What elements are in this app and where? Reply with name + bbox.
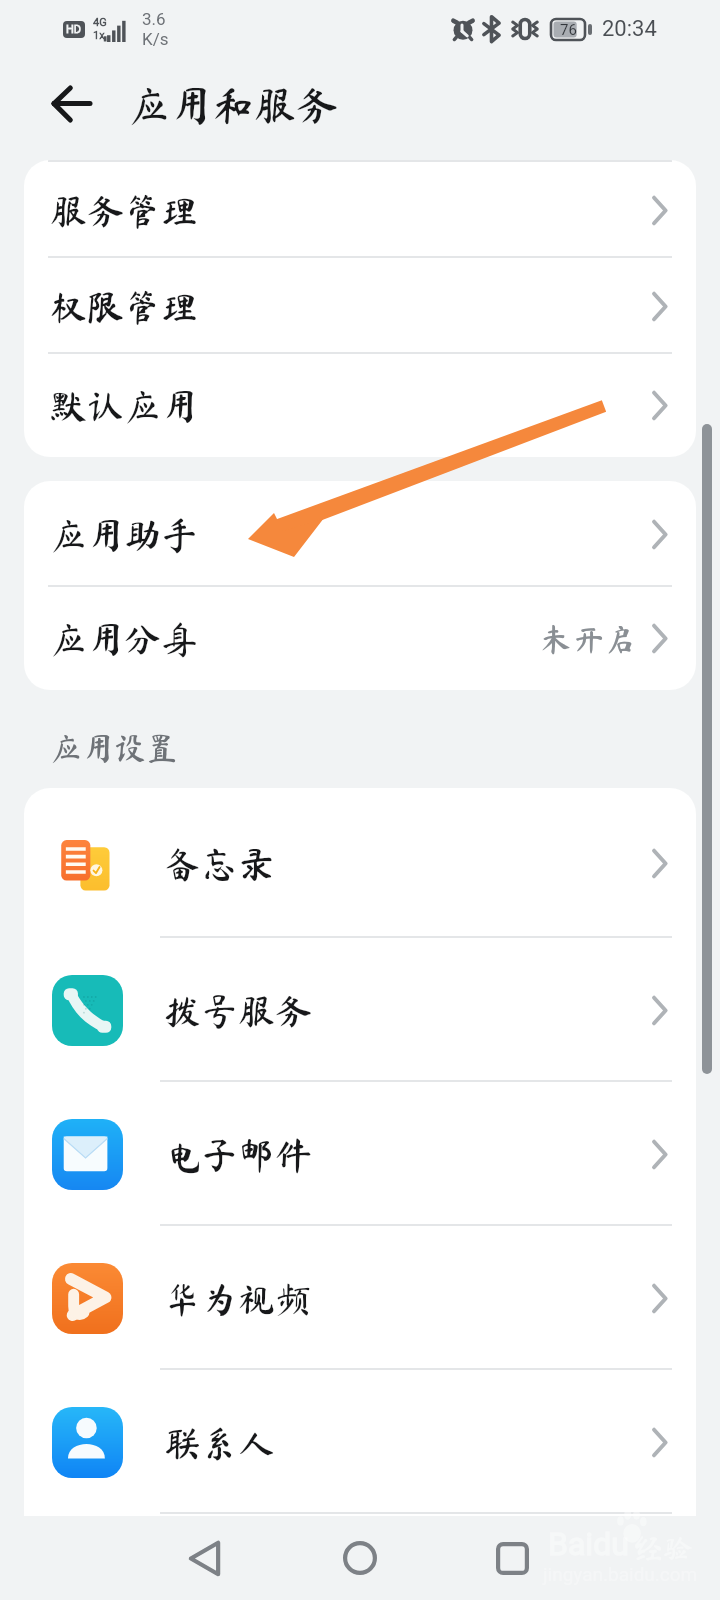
staticText: 应用分身 (50, 620, 198, 657)
button[interactable]: Back (34, 68, 110, 140)
button[interactable]: 应用分身 (24, 587, 696, 690)
button[interactable]: Back (160, 1516, 248, 1600)
button[interactable]: Home (316, 1516, 404, 1600)
staticText: 1x (93, 29, 105, 42)
staticText: 未开启 (540, 623, 637, 655)
staticText: 应用设置 (50, 732, 179, 764)
staticText: 76 (560, 21, 577, 39)
button[interactable]: Recents (468, 1516, 556, 1600)
staticText: 默认应用 (50, 387, 198, 424)
staticText: HD (66, 23, 82, 36)
staticText: 应用助手 (50, 516, 198, 553)
button[interactable]: 权限管理 (24, 258, 696, 354)
button[interactable]: 电子邮件 (24, 1082, 696, 1226)
staticText: 权限管理 (50, 288, 198, 325)
staticText: 华为视频 (164, 1280, 312, 1317)
staticText: 3.6 (142, 9, 166, 29)
staticText: 服务管理 (50, 192, 198, 229)
staticText: 备忘录 (164, 845, 275, 882)
staticText: 20:34 (602, 16, 657, 42)
button[interactable]: 拨号服务 (24, 938, 696, 1082)
button[interactable]: 联系人 (24, 1370, 696, 1514)
button[interactable]: 备忘录 (24, 788, 696, 938)
staticText: K/s (142, 29, 169, 49)
staticText: 联系人 (164, 1424, 275, 1461)
staticText: 电子邮件 (164, 1136, 312, 1173)
button[interactable]: 应用助手 (24, 481, 696, 587)
staticText: 4G (93, 16, 107, 29)
button[interactable]: 服务管理 (24, 162, 696, 258)
button[interactable]: 默认应用 (24, 354, 696, 457)
staticText: 应用和服务 (128, 84, 339, 126)
button[interactable]: 华为视频 (24, 1226, 696, 1370)
staticText: 拨号服务 (164, 992, 312, 1029)
